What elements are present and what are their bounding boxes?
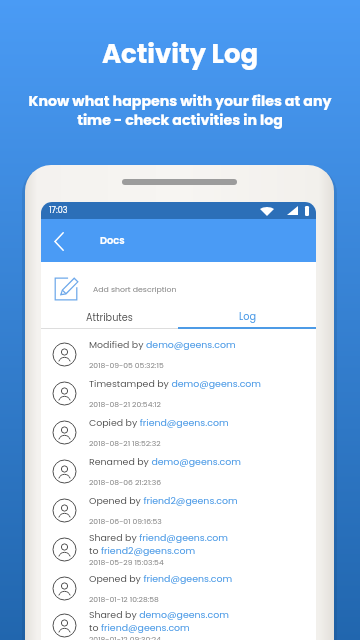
staticText: Log [239, 310, 256, 324]
button[interactable]: Shared by friend@geens.com [41, 530, 316, 569]
button[interactable]: Add short description [41, 262, 316, 307]
staticText: Opened by friend@geens.com [89, 572, 233, 585]
staticText: Know what happens with your files at any… [20, 91, 340, 130]
button[interactable]: Renamed by demo@geens.com [41, 452, 316, 491]
staticText: 17:03 [49, 205, 68, 216]
staticText: to friend2@geens.com [89, 544, 196, 557]
staticText: 2018-05-29 15:03:54 [89, 557, 164, 568]
staticText: 2018-08-21 18:52:32 [89, 438, 161, 449]
staticText: Docs [100, 234, 125, 248]
staticText: 2018-06-01 09:16:53 [89, 516, 162, 527]
staticText: Modified by demo@geens.com [89, 338, 236, 351]
button[interactable]: Back [41, 223, 77, 259]
staticText: 2018-08-21 20:54:12 [89, 399, 161, 410]
staticText: Activity Log [0, 36, 360, 72]
staticText: Shared by friend@geens.com [89, 531, 229, 544]
button[interactable]: Timestamped by demo@geens.com [41, 374, 316, 413]
staticText: Add short description [93, 284, 177, 295]
button[interactable]: Shared by demo@geens.com [41, 608, 316, 640]
button[interactable]: Attributes [41, 307, 178, 329]
button[interactable]: Copied by friend@geens.com [41, 413, 316, 452]
staticText: 2018-08-06 21:21:36 [89, 477, 162, 488]
staticText: 2018-01-12 10:28:58 [89, 594, 159, 605]
staticText: Opened by friend2@geens.com [89, 494, 238, 507]
staticText: 2018-01-12 09:30:24 [89, 634, 161, 640]
staticText: Shared by demo@geens.com [89, 608, 229, 621]
staticText: Renamed by demo@geens.com [89, 455, 242, 468]
button[interactable]: Log [178, 307, 316, 329]
staticText: 2018-09-05 05:32:15 [89, 360, 164, 371]
button[interactable]: Opened by friend2@geens.com [41, 491, 316, 530]
button[interactable]: Modified by demo@geens.com [41, 335, 316, 374]
staticText: Copied by friend@geens.com [89, 416, 229, 429]
staticText: to friend@geens.com [89, 621, 190, 634]
button[interactable]: Opened by friend@geens.com [41, 569, 316, 608]
staticText: Attributes [86, 311, 133, 325]
staticText: Timestamped by demo@geens.com [89, 377, 262, 390]
